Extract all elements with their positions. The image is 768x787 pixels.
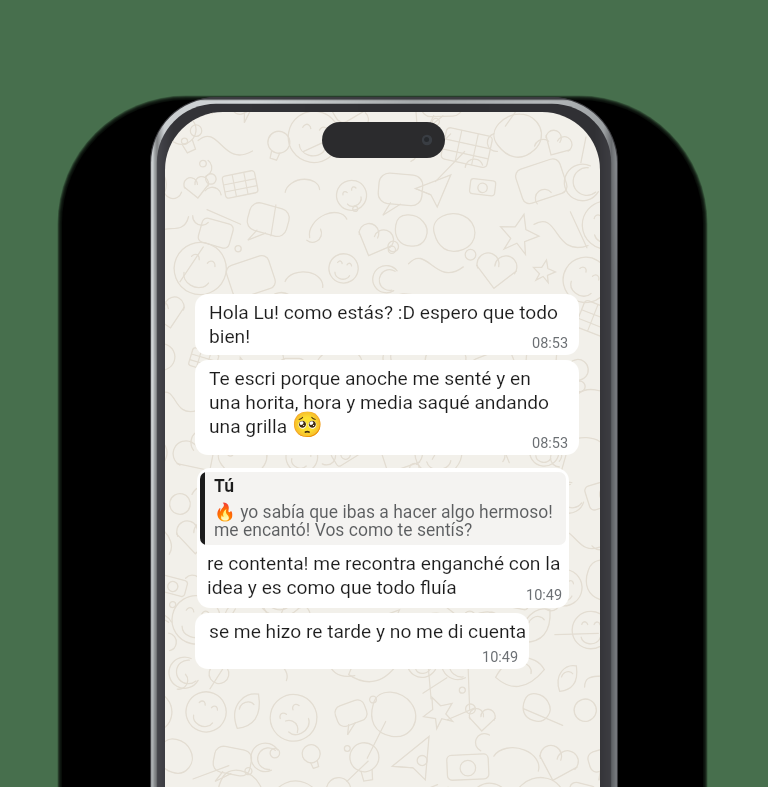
button[interactable]: se me hizo re tarde y no me di cuenta <box>195 613 529 669</box>
button[interactable]: Te escri porque anoche me senté y en una… <box>195 360 579 455</box>
staticText: 🔥 yo sabía que ibas a hacer algo hermoso… <box>214 502 553 540</box>
staticText: Hola Lu! como estás? :D espero que todo … <box>209 301 558 348</box>
staticText: 08:53 <box>532 435 569 452</box>
button[interactable]: Dynamic island <box>322 122 445 158</box>
button[interactable]: Tú <box>197 468 569 608</box>
staticText: 08:53 <box>532 335 569 352</box>
staticText: Te escri porque anoche me senté y en una… <box>209 367 550 439</box>
staticText: 10:49 <box>526 587 563 604</box>
staticText: re contenta! me recontra enganché con la… <box>207 552 561 599</box>
button[interactable]: Hola Lu! como estás? :D espero que todo … <box>195 294 579 355</box>
staticText: Tú <box>214 476 235 497</box>
staticText: se me hizo re tarde y no me di cuenta <box>209 620 527 643</box>
staticText: 10:49 <box>482 649 519 666</box>
